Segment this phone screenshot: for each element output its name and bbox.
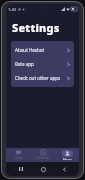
staticText: Rate app xyxy=(15,61,34,67)
button[interactable]: Rate app xyxy=(11,57,74,71)
button[interactable]: Menu xyxy=(55,148,79,162)
button[interactable]: Check out other apps xyxy=(11,71,74,85)
button[interactable]: Discover xyxy=(31,148,55,162)
button[interactable]: Back xyxy=(58,163,70,175)
staticText: Discover xyxy=(37,156,50,160)
staticText: Menu xyxy=(63,158,72,160)
staticText: Check out other apps xyxy=(15,75,61,81)
staticText: Chats xyxy=(14,156,23,160)
staticText: 1:43 xyxy=(8,7,16,12)
button[interactable]: About Hexbot xyxy=(11,43,74,57)
staticText: Settings xyxy=(12,20,60,35)
staticText: About Hexbot xyxy=(15,47,45,53)
button[interactable]: Home xyxy=(37,163,49,175)
button[interactable]: Chats xyxy=(6,148,31,162)
button[interactable]: Recents xyxy=(15,163,27,175)
